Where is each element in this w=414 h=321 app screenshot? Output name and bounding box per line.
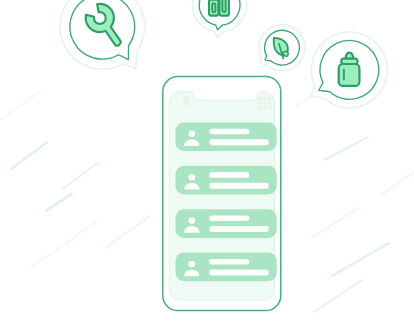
button[interactable]: Service categories illustration: [0, 0, 414, 321]
